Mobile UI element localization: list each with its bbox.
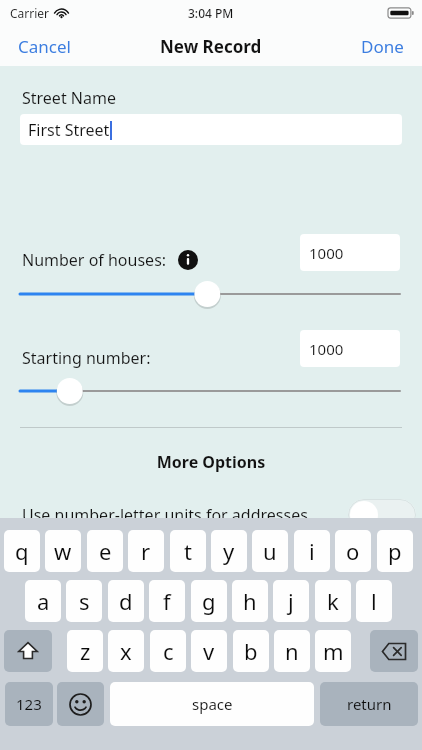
button[interactable]: 1000: [300, 234, 400, 271]
button[interactable]: l: [356, 580, 392, 622]
button[interactable]: z: [67, 630, 103, 672]
button[interactable]: n: [274, 630, 310, 672]
staticText: m: [323, 636, 344, 666]
button[interactable]: Use number-letter units for addresses: [0, 491, 422, 539]
button[interactable]: 1000: [300, 330, 400, 367]
button[interactable]: Slider: [0, 278, 422, 310]
staticText: 1000: [309, 243, 344, 263]
button[interactable]: u: [252, 530, 288, 572]
button[interactable]: e: [87, 530, 123, 572]
button[interactable]: p: [377, 530, 413, 572]
staticText: j: [288, 586, 294, 616]
staticText: 1000: [309, 339, 344, 359]
button[interactable]: Emoji keyboard: [57, 682, 104, 726]
button[interactable]: g: [191, 580, 227, 622]
staticText: First Street: [28, 119, 110, 141]
staticText: y: [223, 536, 235, 566]
button[interactable]: f: [149, 580, 185, 622]
button[interactable]: Shift: [4, 630, 52, 672]
button[interactable]: h: [232, 580, 268, 622]
staticText: g: [202, 586, 216, 616]
staticText: c: [163, 636, 174, 666]
button[interactable]: i: [294, 530, 330, 572]
staticText: New Record: [160, 35, 262, 58]
staticText: p: [388, 536, 402, 566]
button[interactable]: r: [128, 530, 164, 572]
staticText: e: [99, 536, 112, 566]
staticText: a: [37, 586, 50, 616]
button[interactable]: space: [110, 682, 314, 726]
staticText: s: [79, 586, 90, 616]
staticText: Use number-letter units for addresses: [22, 504, 308, 526]
staticText: d: [119, 586, 133, 616]
staticText: 3:04 PM: [188, 5, 234, 21]
button[interactable]: o: [335, 530, 371, 572]
staticText: space: [192, 694, 233, 714]
button[interactable]: Done: [343, 29, 422, 64]
staticText: z: [80, 636, 91, 666]
button[interactable]: k: [315, 580, 351, 622]
staticText: return: [347, 694, 392, 714]
staticText: Street Name: [22, 87, 116, 109]
staticText: Done: [361, 35, 404, 58]
button[interactable]: q: [4, 530, 40, 572]
button[interactable]: b: [233, 630, 269, 672]
button[interactable]: m: [315, 630, 351, 672]
staticText: x: [120, 636, 132, 666]
staticText: n: [285, 636, 299, 666]
button[interactable]: a: [25, 580, 61, 622]
staticText: r: [141, 536, 151, 566]
button[interactable]: j: [273, 580, 309, 622]
button[interactable]: v: [191, 630, 227, 672]
button[interactable]: t: [170, 530, 206, 572]
button[interactable]: return: [320, 682, 418, 726]
staticText: t: [184, 536, 192, 566]
button[interactable]: Delete: [370, 630, 418, 672]
button[interactable]: x: [108, 630, 144, 672]
staticText: f: [163, 586, 171, 616]
button[interactable]: s: [66, 580, 102, 622]
staticText: Number of houses:: [22, 249, 167, 271]
button[interactable]: 123: [5, 682, 53, 726]
staticText: u: [263, 536, 277, 566]
staticText: Cancel: [18, 35, 71, 58]
staticText: i: [309, 536, 315, 566]
button[interactable]: c: [150, 630, 186, 672]
button[interactable]: y: [211, 530, 247, 572]
staticText: 123: [16, 694, 42, 714]
button[interactable]: Cancel: [0, 29, 89, 64]
button[interactable]: Information about number of houses: [178, 250, 198, 270]
button[interactable]: Slider: [0, 375, 422, 407]
button[interactable]: w: [45, 530, 81, 572]
staticText: w: [54, 536, 72, 566]
button[interactable]: d: [108, 580, 144, 622]
button[interactable]: First Street: [20, 114, 402, 145]
staticText: h: [243, 586, 257, 616]
staticText: b: [244, 636, 258, 666]
staticText: More Options: [0, 451, 422, 473]
staticText: Carrier: [10, 5, 50, 21]
staticText: v: [203, 636, 215, 666]
staticText: l: [371, 586, 377, 616]
staticText: k: [327, 586, 339, 616]
staticText: q: [15, 536, 29, 566]
staticText: o: [346, 536, 360, 566]
staticText: Starting number:: [22, 347, 151, 369]
